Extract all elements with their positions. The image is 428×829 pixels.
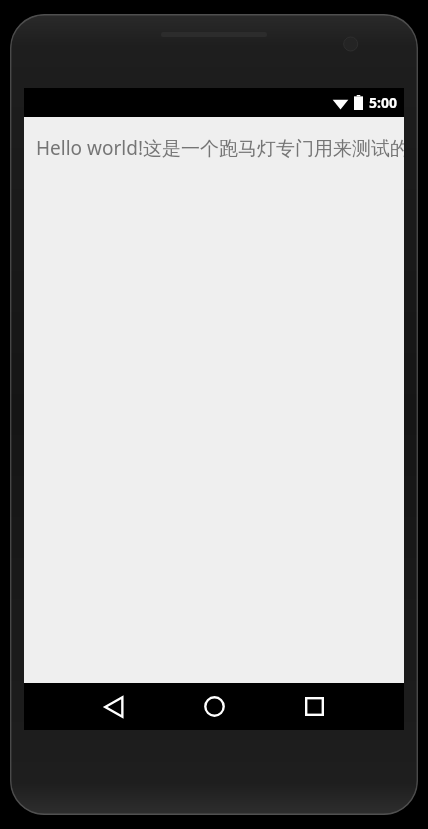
button[interactable]: Hello world!这是一个跑马灯专门用来测试的文字内容	[36, 135, 404, 161]
button[interactable]: Back	[87, 683, 141, 730]
staticText: Hello world!这是一个跑马灯专门用来测试的文字内容	[36, 135, 404, 161]
staticText: 5:00	[369, 93, 397, 112]
button[interactable]: Home	[187, 683, 241, 730]
button[interactable]: Recent apps	[287, 683, 341, 730]
